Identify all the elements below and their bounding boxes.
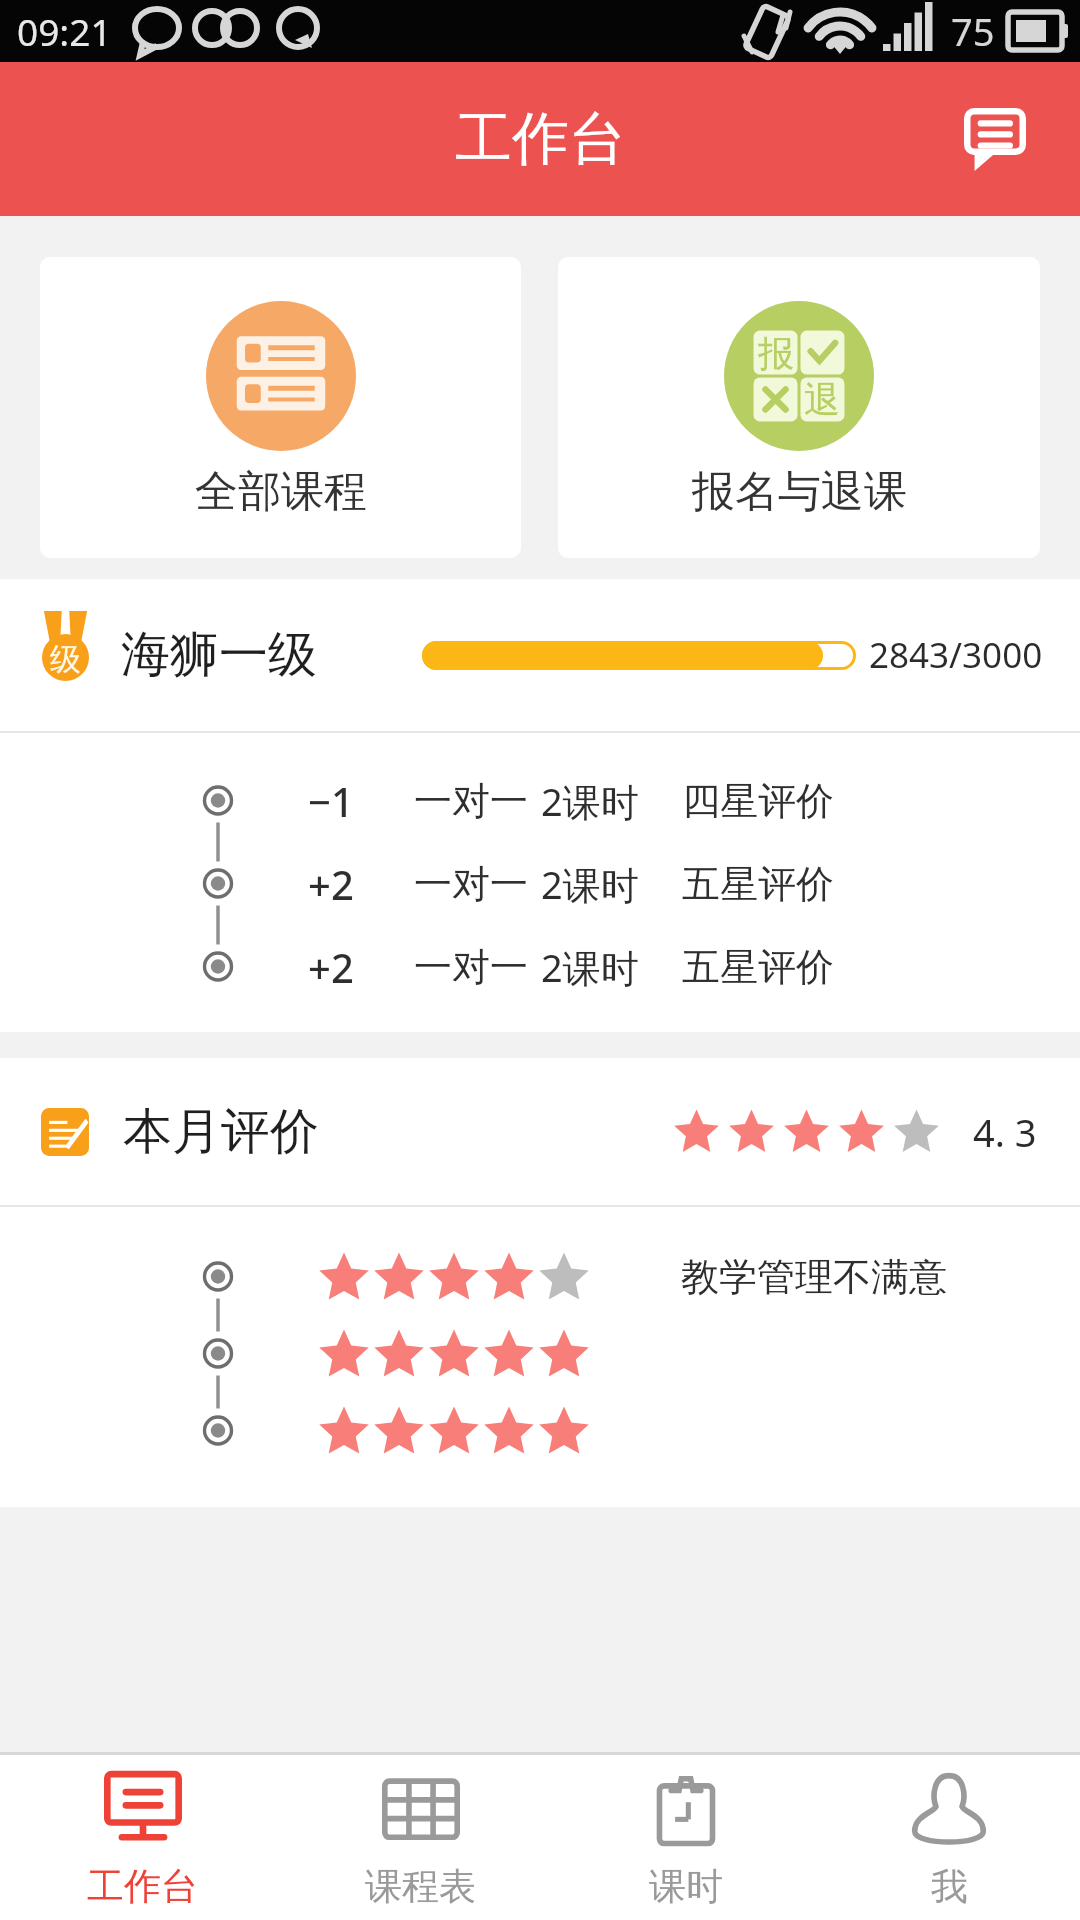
button[interactable]: 课时 <box>555 1755 817 1920</box>
staticText: 75 <box>951 5 995 57</box>
staticText: 报名与退课 <box>692 465 907 519</box>
staticText: 2课时 <box>541 858 639 910</box>
staticText: 2课时 <box>541 941 639 993</box>
button[interactable]: +2 <box>198 925 1080 1008</box>
staticText: 工作台 <box>87 1863 198 1910</box>
staticText: 工作台 <box>455 103 626 175</box>
button[interactable]: Messages <box>943 87 1047 191</box>
staticText: 一对一 <box>414 943 528 991</box>
staticText: 五星评价 <box>682 860 834 908</box>
staticText: 教学管理不满意 <box>681 1253 947 1301</box>
staticText: +2 <box>308 857 354 911</box>
staticText: 09:21 <box>17 6 112 56</box>
staticText: 报 <box>758 331 794 376</box>
button[interactable]: 我 <box>817 1755 1080 1920</box>
button[interactable]: 工作台 <box>0 1755 285 1920</box>
staticText: 一对一 <box>414 777 528 825</box>
staticText: 全部课程 <box>195 465 367 519</box>
button[interactable]: 课程表 <box>285 1755 555 1920</box>
button[interactable]: 教学管理不满意 <box>198 1238 1080 1315</box>
staticText: 4. 3 <box>973 1106 1037 1158</box>
button[interactable] <box>198 1315 1080 1392</box>
button[interactable]: 级 <box>0 579 1080 731</box>
button[interactable]: 报 <box>558 257 1040 558</box>
staticText: 本月评价 <box>123 1101 319 1163</box>
staticText: 五星评价 <box>682 943 834 991</box>
staticText: 课时 <box>649 1863 723 1910</box>
staticText: 一对一 <box>414 860 528 908</box>
staticText: 退 <box>804 377 840 422</box>
button[interactable]: 全部课程 <box>40 257 521 558</box>
staticText: 课程表 <box>365 1863 476 1910</box>
button[interactable]: +2 <box>198 842 1080 925</box>
staticText: 2课时 <box>541 775 639 827</box>
button[interactable] <box>198 1392 1080 1469</box>
staticText: 2843/3000 <box>869 631 1043 679</box>
button[interactable]: 本月评价 <box>0 1058 1080 1205</box>
staticText: +2 <box>308 940 354 994</box>
staticText: 级 <box>50 640 81 679</box>
button[interactable]: −1 <box>198 759 1080 842</box>
staticText: −1 <box>308 774 354 828</box>
staticText: 海狮一级 <box>121 624 317 686</box>
staticText: 我 <box>931 1863 968 1910</box>
staticText: 四星评价 <box>682 777 834 825</box>
